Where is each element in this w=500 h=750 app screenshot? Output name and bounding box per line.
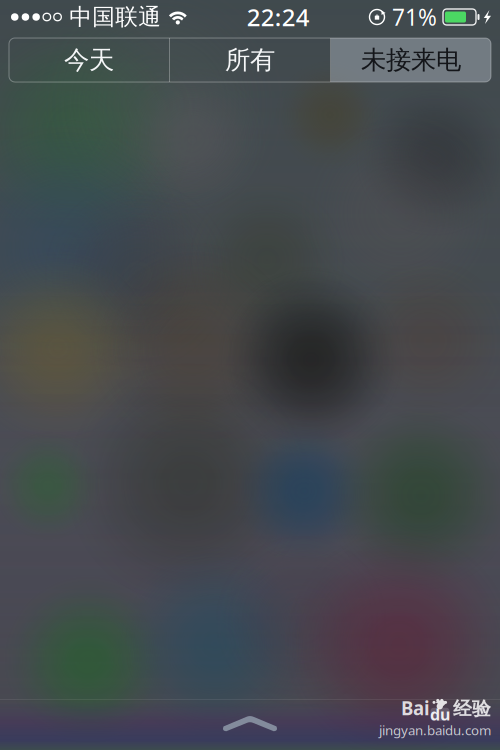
staticText: Bai	[401, 695, 430, 720]
button[interactable]: 未接来电	[331, 38, 491, 82]
staticText: du	[430, 704, 450, 725]
staticText: 未接来电	[361, 44, 461, 75]
staticText: 中国联通	[69, 3, 161, 31]
staticText: jingyan.baidu.com	[379, 721, 491, 739]
staticText: 所有	[225, 44, 275, 75]
staticText: 经验	[453, 697, 491, 720]
button[interactable]: 今天	[9, 38, 169, 82]
button[interactable]: 所有	[170, 38, 330, 82]
staticText: 今天	[64, 44, 114, 75]
staticText: 22:24	[247, 1, 310, 33]
staticText: 71%	[392, 2, 437, 32]
